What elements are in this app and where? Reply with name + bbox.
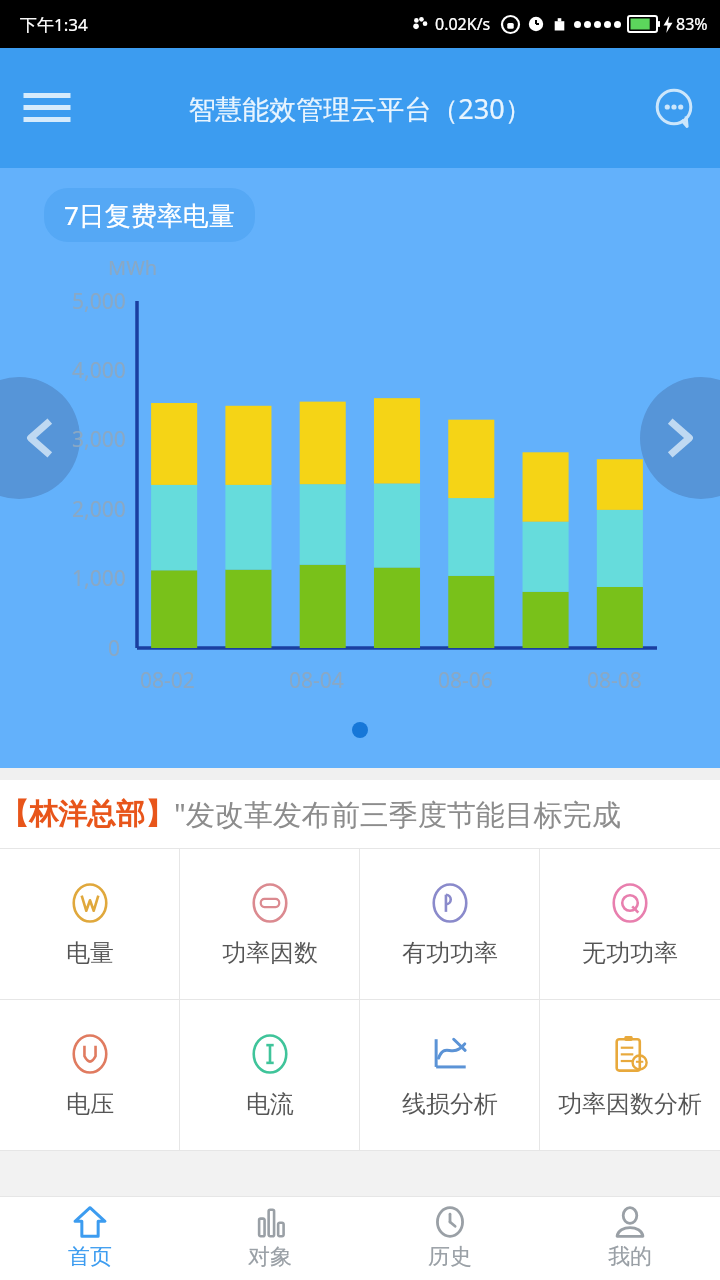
button[interactable]: 电压 (0, 1000, 180, 1150)
button[interactable]: Messages (642, 76, 706, 140)
staticText: 历史 (428, 1243, 472, 1271)
staticText: 我的 (608, 1243, 652, 1271)
button[interactable]: 首页 (0, 1196, 180, 1280)
staticText: 智慧能效管理云平台（230） (188, 90, 532, 127)
staticText: 电流 (246, 1089, 294, 1119)
button[interactable]: Previous (0, 377, 80, 499)
staticText: 功率因数分析 (558, 1089, 702, 1119)
staticText: 2,000 (72, 495, 126, 524)
staticText: 08-06 (438, 666, 493, 695)
staticText: 1,000 (72, 564, 126, 593)
staticText: 下午1:34 (20, 13, 88, 36)
staticText: 08-02 (140, 666, 195, 695)
button[interactable]: 无功功率 (540, 849, 720, 999)
button[interactable]: 7日复费率电量 (44, 188, 255, 242)
staticText: 08-04 (289, 666, 344, 695)
staticText: 【林洋总部】 (0, 796, 174, 833)
staticText: 线损分析 (402, 1089, 498, 1119)
button[interactable]: 历史 (360, 1196, 540, 1280)
button[interactable]: 对象 (180, 1196, 360, 1280)
staticText: 0 (108, 634, 121, 663)
staticText: 83% (676, 13, 708, 35)
staticText: 功率因数 (222, 938, 318, 968)
staticText: 5,000 (72, 287, 126, 316)
staticText: 电压 (66, 1089, 114, 1119)
staticText: 7日复费率电量 (64, 197, 235, 233)
button[interactable]: 电流 (180, 1000, 360, 1150)
staticText: 3,000 (72, 425, 126, 454)
staticText: 0.02K/s (435, 13, 491, 35)
button[interactable]: 线损分析 (360, 1000, 540, 1150)
button[interactable]: 功率因数分析 (540, 1000, 720, 1150)
staticText: 08-08 (587, 666, 642, 695)
staticText: 首页 (68, 1243, 112, 1271)
staticText: 电量 (66, 938, 114, 968)
staticText: 无功功率 (582, 938, 678, 968)
button[interactable]: Next (640, 377, 720, 499)
staticText: 对象 (248, 1243, 292, 1271)
button[interactable]: 功率因数 (180, 849, 360, 999)
staticText: 有功功率 (402, 938, 498, 968)
button[interactable]: 我的 (540, 1196, 720, 1280)
button[interactable]: Menu (14, 75, 80, 141)
staticText: MWh (108, 254, 158, 281)
staticText: 4,000 (72, 356, 126, 385)
button[interactable]: 电量 (0, 849, 180, 999)
staticText: "发改革发布前三季度节能目标完成 (174, 794, 621, 834)
button[interactable]: 有功功率 (360, 849, 540, 999)
